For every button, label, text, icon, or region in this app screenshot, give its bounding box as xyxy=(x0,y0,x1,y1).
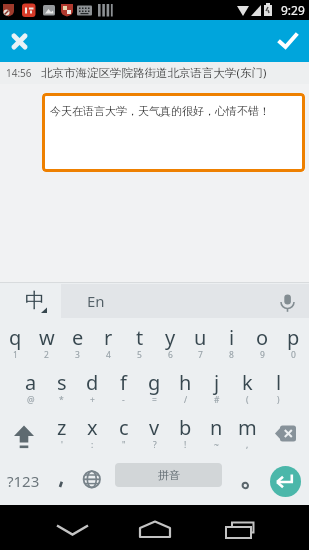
button[interactable]: 拼音 xyxy=(115,463,222,487)
staticText: 9:29 xyxy=(281,2,305,18)
button[interactable]: w xyxy=(31,323,62,368)
button[interactable]: j xyxy=(201,368,232,413)
staticText: # xyxy=(214,394,220,406)
button[interactable]: h xyxy=(170,368,201,413)
staticText: ( xyxy=(246,394,249,406)
staticText: + xyxy=(90,394,95,406)
button[interactable]: u xyxy=(185,323,216,368)
staticText: ' xyxy=(61,439,63,451)
staticText: ?123 xyxy=(7,471,40,491)
button[interactable]: y xyxy=(155,323,186,368)
staticText: ? xyxy=(153,439,157,451)
button[interactable]: x xyxy=(77,413,108,458)
button[interactable]: v xyxy=(139,413,170,458)
button[interactable] xyxy=(267,20,309,62)
staticText: z xyxy=(57,414,67,441)
button[interactable] xyxy=(47,458,76,503)
button[interactable] xyxy=(267,284,309,318)
staticText: ) xyxy=(277,394,280,406)
staticText: r xyxy=(104,324,113,351)
staticText: j xyxy=(214,369,220,396)
staticText: ! xyxy=(184,439,187,451)
staticText: s xyxy=(57,369,67,396)
staticText: " xyxy=(122,439,126,451)
staticText: o xyxy=(256,324,269,351)
button[interactable]: o xyxy=(247,323,278,368)
button[interactable]: m xyxy=(232,413,263,458)
button[interactable]: s xyxy=(46,368,77,413)
button[interactable]: e xyxy=(62,323,93,368)
button[interactable]: t xyxy=(124,323,155,368)
button[interactable]: i xyxy=(216,323,247,368)
staticText: h xyxy=(179,369,192,396)
staticText: , xyxy=(246,439,249,451)
staticText: = xyxy=(152,394,157,406)
button[interactable]: z xyxy=(46,413,77,458)
button[interactable]: c xyxy=(108,413,139,458)
staticText: @ xyxy=(27,394,35,406)
staticText: k xyxy=(242,369,253,396)
button[interactable] xyxy=(215,505,265,550)
staticText: 6 xyxy=(168,349,173,361)
staticText: 3 xyxy=(75,349,80,361)
staticText: 拼音 xyxy=(158,468,180,482)
staticText: 0 xyxy=(291,349,296,361)
button[interactable]: g xyxy=(139,368,170,413)
staticText: 14:56 xyxy=(6,66,32,80)
staticText: 2 xyxy=(44,349,49,361)
staticText: d xyxy=(86,369,99,396)
staticText: g xyxy=(148,369,161,396)
staticText: y xyxy=(165,324,176,351)
staticText: 4 xyxy=(106,349,111,361)
staticText: m xyxy=(238,414,257,441)
staticText: e xyxy=(72,324,84,351)
staticText: v xyxy=(149,414,160,441)
button[interactable] xyxy=(265,413,309,458)
staticText: 1 xyxy=(13,349,18,361)
staticText: l xyxy=(276,369,282,396)
staticText: c xyxy=(119,414,129,441)
staticText: n xyxy=(210,414,223,441)
button[interactable]: n xyxy=(201,413,232,458)
button[interactable]: ?123 xyxy=(0,458,47,503)
button[interactable] xyxy=(0,413,44,458)
staticText: ~ xyxy=(214,439,219,451)
staticText: * xyxy=(59,394,64,406)
button[interactable] xyxy=(76,458,107,503)
button[interactable]: 14:56 xyxy=(0,62,309,84)
staticText: t xyxy=(136,324,144,351)
staticText: p xyxy=(287,324,300,351)
staticText: q xyxy=(9,324,22,351)
staticText: b xyxy=(179,414,192,441)
button[interactable]: 今天在语言大学，天气真的很好，心情不错！ xyxy=(42,93,305,172)
button[interactable] xyxy=(0,20,38,62)
staticText: : xyxy=(91,439,94,451)
staticText: 今天在语言大学，天气真的很好，心情不错！ xyxy=(50,104,270,118)
staticText: i xyxy=(229,324,235,351)
button[interactable]: p xyxy=(278,323,309,368)
staticText: En xyxy=(87,291,105,311)
button[interactable] xyxy=(130,505,180,550)
staticText: - xyxy=(122,394,125,406)
staticText: 8 xyxy=(229,349,234,361)
staticText: w xyxy=(39,324,55,351)
button[interactable]: r xyxy=(93,323,124,368)
button[interactable]: a xyxy=(15,368,46,413)
button[interactable]: q xyxy=(0,323,31,368)
button[interactable] xyxy=(48,505,98,550)
button[interactable]: d xyxy=(77,368,108,413)
staticText: 9 xyxy=(260,349,265,361)
button[interactable]: b xyxy=(170,413,201,458)
button[interactable]: k xyxy=(232,368,263,413)
staticText: 北京市海淀区学院路街道北京语言大学(东门) xyxy=(41,65,267,81)
button[interactable]: f xyxy=(108,368,139,413)
staticText: 5 xyxy=(137,349,142,361)
staticText: x xyxy=(87,414,98,441)
button[interactable]: 中 xyxy=(0,282,61,318)
button[interactable] xyxy=(270,466,301,497)
staticText: 中 xyxy=(25,288,45,313)
button[interactable] xyxy=(230,458,261,503)
button[interactable]: l xyxy=(263,368,294,413)
button[interactable]: En xyxy=(61,284,130,318)
staticText: 7 xyxy=(198,349,203,361)
